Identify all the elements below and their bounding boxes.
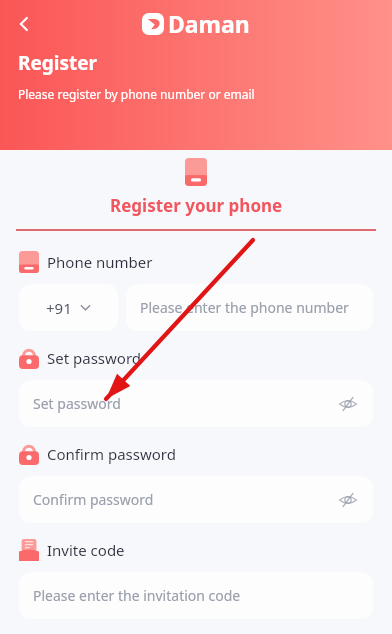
button[interactable]: Please enter the phone number [126, 284, 373, 331]
button[interactable]: +91 [19, 284, 118, 331]
staticText: Please enter the phone number [140, 298, 349, 317]
staticText: Set password [33, 394, 121, 413]
staticText: Register your phone [110, 194, 283, 217]
staticText: Phone number [47, 252, 153, 272]
staticText: Confirm password [47, 444, 176, 464]
staticText: Confirm password [33, 490, 154, 509]
staticText: Please enter the invitation code [33, 586, 241, 605]
staticText: Please register by phone number or email [18, 86, 255, 102]
button[interactable]: Confirm password [19, 476, 373, 523]
button[interactable]: Back [6, 6, 42, 42]
staticText: Register [18, 50, 98, 76]
button[interactable]: Show password [335, 391, 361, 417]
staticText: +91 [46, 298, 72, 318]
staticText: Set password [47, 348, 142, 368]
staticText: Invite code [47, 540, 125, 560]
button[interactable]: Set password [19, 380, 373, 427]
button[interactable]: Please enter the invitation code [19, 572, 373, 619]
button[interactable]: Show confirm password [335, 487, 361, 513]
staticText: Daman [168, 8, 250, 39]
